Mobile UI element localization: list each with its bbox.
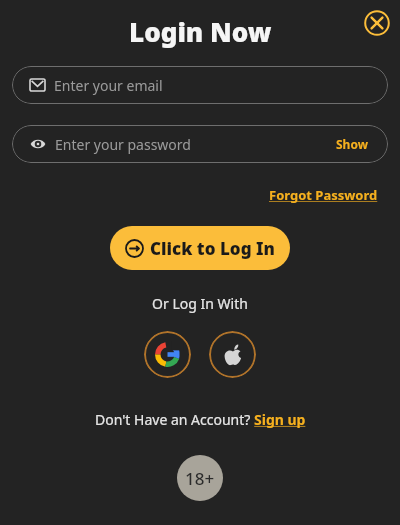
button[interactable]: Forgot Password — [267, 184, 380, 206]
staticText: Enter your email — [54, 76, 372, 95]
staticText: Don't Have an Account? — [95, 410, 254, 429]
staticText: Forgot Password — [269, 186, 378, 204]
button[interactable]: Log in with Apple — [209, 331, 256, 378]
button[interactable]: Enter your email — [12, 66, 388, 104]
button[interactable]: Log in with Google — [144, 331, 191, 378]
button[interactable]: Show — [332, 134, 372, 154]
staticText: Login Now — [129, 14, 272, 49]
button[interactable]: Sign up — [254, 410, 306, 429]
staticText: Or Log In With — [0, 294, 400, 313]
staticText: Enter your password — [55, 135, 332, 154]
staticText: 18+ — [185, 467, 215, 490]
staticText: Show — [336, 136, 368, 152]
button[interactable]: Close — [362, 8, 392, 38]
staticText: Sign up — [254, 410, 306, 429]
staticText: Click to Log In — [150, 237, 275, 260]
button[interactable]: Click to Log In — [110, 226, 290, 270]
button[interactable]: Enter your password — [12, 125, 388, 163]
